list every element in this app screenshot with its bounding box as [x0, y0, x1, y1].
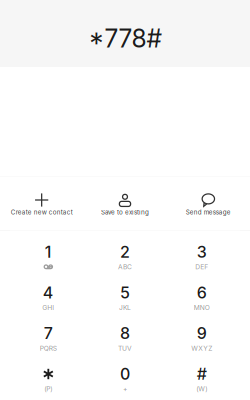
staticText: 6 [197, 283, 207, 302]
button[interactable]: 3 [163, 231, 240, 271]
staticText: + [123, 385, 127, 393]
staticText: Save to existing [101, 208, 149, 216]
button[interactable]: 7 [10, 312, 87, 353]
staticText: JKL [119, 303, 131, 312]
staticText: GHI [42, 303, 54, 312]
staticText: 8 [120, 324, 130, 343]
button[interactable]: 8 [87, 312, 163, 353]
button[interactable]: 5 [87, 271, 163, 312]
staticText: *778# [88, 23, 161, 53]
staticText: 3 [197, 242, 207, 262]
staticText: 0 [120, 364, 130, 384]
staticText: (W) [196, 385, 207, 393]
staticText: 4 [43, 283, 54, 302]
button[interactable]: 1 [10, 231, 87, 271]
staticText: Send message [186, 208, 231, 216]
staticText: 5 [120, 283, 130, 302]
staticText: PQRS [40, 344, 57, 352]
staticText: (P) [44, 385, 52, 393]
staticText: MNO [194, 303, 210, 312]
button[interactable]: 0 [87, 353, 163, 393]
button[interactable]: (P) [10, 353, 87, 393]
button[interactable]: 2 [87, 231, 163, 271]
staticText: WXYZ [191, 344, 212, 352]
staticText: 1 [45, 242, 52, 262]
button[interactable]: 9 [163, 312, 240, 353]
staticText: 7 [44, 324, 53, 343]
staticText: # [197, 364, 207, 384]
button[interactable]: 6 [163, 271, 240, 312]
staticText: 9 [197, 324, 207, 343]
staticText: Create new contact [11, 208, 73, 216]
button[interactable]: # [163, 353, 240, 393]
staticText: 2 [120, 242, 130, 262]
button[interactable]: Send message [167, 177, 250, 230]
staticText: ABC [118, 263, 132, 271]
button[interactable]: Save to existing [83, 177, 167, 230]
staticText: DEF [195, 263, 208, 271]
button[interactable]: Create new contact [0, 177, 83, 230]
button[interactable]: 4 [10, 271, 87, 312]
staticText: TUV [118, 344, 132, 352]
